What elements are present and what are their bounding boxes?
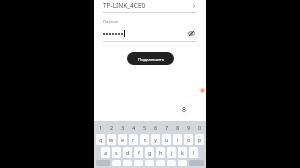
button[interactable]: y xyxy=(151,134,160,145)
button[interactable]: p xyxy=(195,134,204,145)
staticText: k xyxy=(181,149,184,156)
staticText: 2 xyxy=(110,124,114,131)
staticText: TP-LINK_4CE0 xyxy=(103,1,146,10)
button[interactable]: l xyxy=(189,147,198,158)
staticText: 3 xyxy=(121,124,125,131)
button[interactable]: h xyxy=(156,147,165,158)
staticText: h xyxy=(159,149,163,156)
staticText: a xyxy=(104,149,108,156)
button[interactable]: r xyxy=(129,134,138,145)
button[interactable]: q xyxy=(96,134,105,145)
button[interactable]: t xyxy=(140,134,149,145)
staticText: w xyxy=(109,136,114,143)
staticText: t xyxy=(144,136,146,143)
staticText: d xyxy=(126,149,130,156)
button[interactable]: Show password xyxy=(186,28,197,39)
button[interactable]: Подключить xyxy=(127,52,174,65)
staticText: j xyxy=(171,149,173,156)
staticText: 6 xyxy=(154,124,158,131)
staticText: r xyxy=(132,136,135,143)
button[interactable]: a xyxy=(101,147,110,158)
staticText: 1 xyxy=(99,124,103,131)
staticText: p xyxy=(198,136,202,143)
button[interactable]: w xyxy=(107,134,116,145)
button[interactable]: o xyxy=(184,134,193,145)
staticText: 8 xyxy=(176,124,180,131)
button[interactable] xyxy=(123,160,132,166)
staticText: f xyxy=(138,149,140,156)
staticText: o xyxy=(187,136,191,143)
button[interactable]: f xyxy=(134,147,143,158)
button[interactable]: 0 xyxy=(194,123,205,132)
button[interactable]: u xyxy=(162,134,171,145)
staticText: l xyxy=(193,149,195,156)
button[interactable] xyxy=(134,160,143,166)
button[interactable] xyxy=(156,160,165,166)
staticText: 5 xyxy=(143,124,147,131)
button[interactable]: 2 xyxy=(106,123,117,132)
button[interactable]: 3 xyxy=(117,123,128,132)
button[interactable] xyxy=(112,160,121,166)
button[interactable]: k xyxy=(178,147,187,158)
button[interactable] xyxy=(178,160,187,166)
staticText: Подключить xyxy=(138,56,164,62)
button[interactable] xyxy=(145,160,154,166)
button[interactable]: 7 xyxy=(161,123,172,132)
button[interactable]: i xyxy=(173,134,182,145)
staticText: i xyxy=(177,136,179,143)
button[interactable]: 8 xyxy=(172,123,183,132)
staticText: 7 xyxy=(165,124,169,131)
button[interactable]: 5 xyxy=(139,123,150,132)
staticText: g xyxy=(148,149,152,156)
staticText: 0 xyxy=(198,124,202,131)
staticText: Пароль xyxy=(103,19,119,25)
button[interactable]: s xyxy=(112,147,121,158)
button[interactable]: 1 xyxy=(95,123,106,132)
staticText: y xyxy=(154,136,157,143)
button[interactable]: 9 xyxy=(183,123,194,132)
button[interactable] xyxy=(167,160,176,166)
staticText: s xyxy=(115,149,118,156)
staticText: 9 xyxy=(187,124,191,131)
button[interactable]: 4 xyxy=(128,123,139,132)
button[interactable]: g xyxy=(145,147,154,158)
staticText: e xyxy=(121,136,125,143)
staticText: 4 xyxy=(132,124,136,131)
button[interactable]: j xyxy=(167,147,176,158)
button[interactable]: 6 xyxy=(150,123,161,132)
button[interactable]: e xyxy=(118,134,127,145)
button[interactable]: TP-LINK_4CE0 xyxy=(94,0,206,13)
staticText: 8 xyxy=(182,105,187,115)
button[interactable]: d xyxy=(123,147,132,158)
staticText: u xyxy=(165,136,169,143)
staticText: q xyxy=(99,136,103,143)
